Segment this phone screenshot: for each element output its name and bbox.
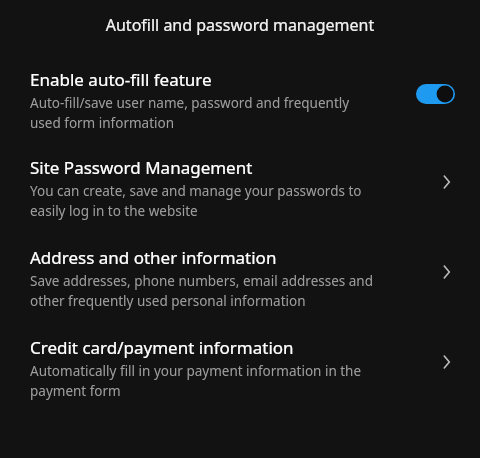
staticText: Save addresses, phone numbers, email add… [30,272,374,310]
staticText: Credit card/payment information [30,336,294,359]
button[interactable]: Credit card/payment information [0,334,480,402]
staticText: Automatically fill in your payment infor… [30,362,362,400]
button[interactable]: Enable auto-fill feature toggle [416,84,455,104]
staticText: Site Password Management [30,156,253,179]
staticText: Auto-fill/save user name, password and f… [30,94,350,132]
button[interactable]: Enable auto-fill feature [0,66,480,134]
staticText: Address and other information [30,246,277,269]
button[interactable]: Open [434,170,458,194]
button[interactable]: Open [434,350,458,374]
button[interactable]: Open [434,260,458,284]
staticText: You can create, save and manage your pas… [30,182,362,220]
staticText: Autofill and password management [0,14,480,36]
button[interactable]: Site Password Management [0,154,480,222]
staticText: Enable auto-fill feature [30,68,212,91]
button[interactable]: Address and other information [0,244,480,312]
